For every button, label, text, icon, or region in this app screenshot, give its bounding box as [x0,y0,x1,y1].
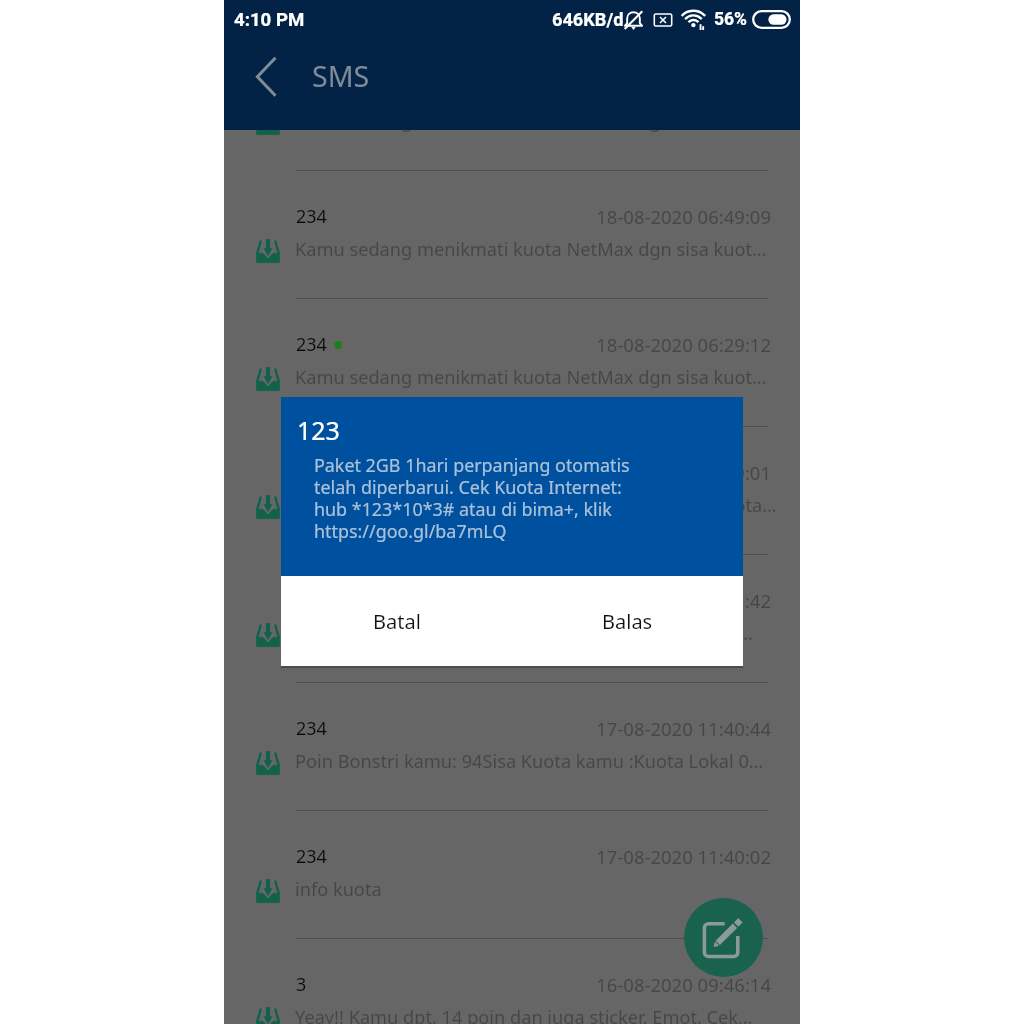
staticText: Poin Bonstri kamu: 94Sisa Kuota kamu :Ku… [295,749,764,774]
button[interactable]: 234 [224,555,800,683]
staticText: info kuota [295,877,382,902]
staticText: 3 [296,972,307,997]
staticText: Kamu sedang menikmati kuota NetMax dgn s… [295,109,767,134]
staticText: Batal [373,608,421,635]
staticText: 234 [296,716,327,741]
staticText: 234 [296,844,327,869]
staticText: Kamu sedang menikmati kuota NetMax dgn s… [295,493,775,518]
staticText: 234 [296,332,327,357]
staticText: 646KB/d [552,9,624,30]
staticText: 17-08-2020 11:40:02 [224,844,771,869]
button[interactable]: 234 [224,299,800,427]
staticText: 17-08-2020 11:40:44 [224,716,771,741]
button[interactable]: 234 [224,43,800,171]
button[interactable]: Compose message [684,898,763,977]
button[interactable]: 234 [224,427,800,555]
button[interactable]: 234 [224,811,800,939]
button[interactable]: Balas [512,576,743,666]
staticText: 234 [296,76,327,101]
staticText: 16-08-2020 09:46:14 [224,972,771,997]
button[interactable]: Back [242,52,290,100]
staticText: SMS [312,57,370,96]
button[interactable]: 3 [224,939,800,1024]
staticText: Paket 2GB 1hari perpanjang otomatis tela… [314,453,644,544]
staticText: 18-08-2020 06:29:12 [224,332,771,357]
staticText: 123 [297,413,340,447]
staticText: Balas [602,608,653,635]
staticText: Kamu sedang menikmati kuota NetMax dgn s… [295,365,767,390]
staticText: 18-08-2020 06:50:41 [224,76,771,101]
staticText: 17-08-2020 11:41:42 [224,588,771,613]
button[interactable]: Batal [281,576,512,666]
button[interactable]: 234 [224,683,800,811]
button[interactable]: 234 [224,171,800,299]
staticText: 18-08-2020 06:29:01 [224,460,771,485]
staticText: 234 [296,460,327,485]
staticText: Yeay!! Kamu dpt. 14 poin dan juga sticke… [295,1005,753,1024]
staticText: Poin Bonstri kamu: 94Sisa Kuota kamu :Ku… [295,621,753,646]
staticText: 56% [714,9,748,30]
staticText: 234 [296,204,327,229]
staticText: 4:10 PM [234,9,305,31]
staticText: Kamu sedang menikmati kuota NetMax dgn s… [295,237,767,262]
staticText: 18-08-2020 06:49:09 [224,204,771,229]
